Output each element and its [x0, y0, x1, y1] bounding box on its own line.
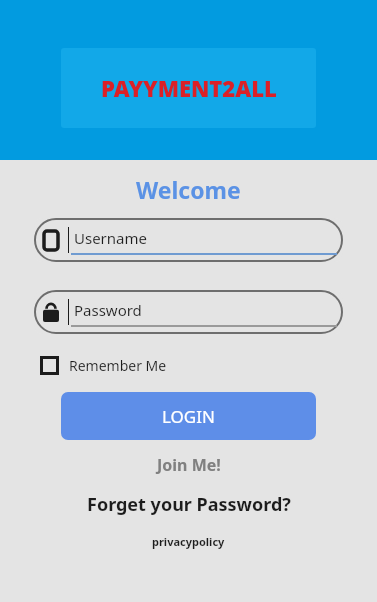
button[interactable]: Password [34, 290, 343, 334]
staticText: Join Me! [157, 454, 221, 476]
staticText: Password [74, 300, 142, 320]
button[interactable]: LOGIN [61, 392, 316, 440]
staticText: Welcome [136, 174, 241, 205]
button[interactable]: Forget your Password? [0, 492, 377, 517]
staticText: Username [74, 228, 147, 248]
button[interactable]: Phone [34, 218, 343, 262]
staticText: Remember Me [69, 356, 167, 375]
other: Phone [44, 231, 58, 250]
staticText: LOGIN [162, 405, 215, 428]
button[interactable]: Remember Me [40, 350, 167, 380]
button[interactable]: privacypolicy [0, 534, 377, 549]
button[interactable]: Join Me! [0, 454, 377, 476]
staticText: privacypolicy [152, 534, 225, 549]
staticText: PAYYMENT2ALL [101, 73, 277, 103]
staticText: Forget your Password? [87, 492, 291, 517]
other: Password [43, 303, 59, 322]
